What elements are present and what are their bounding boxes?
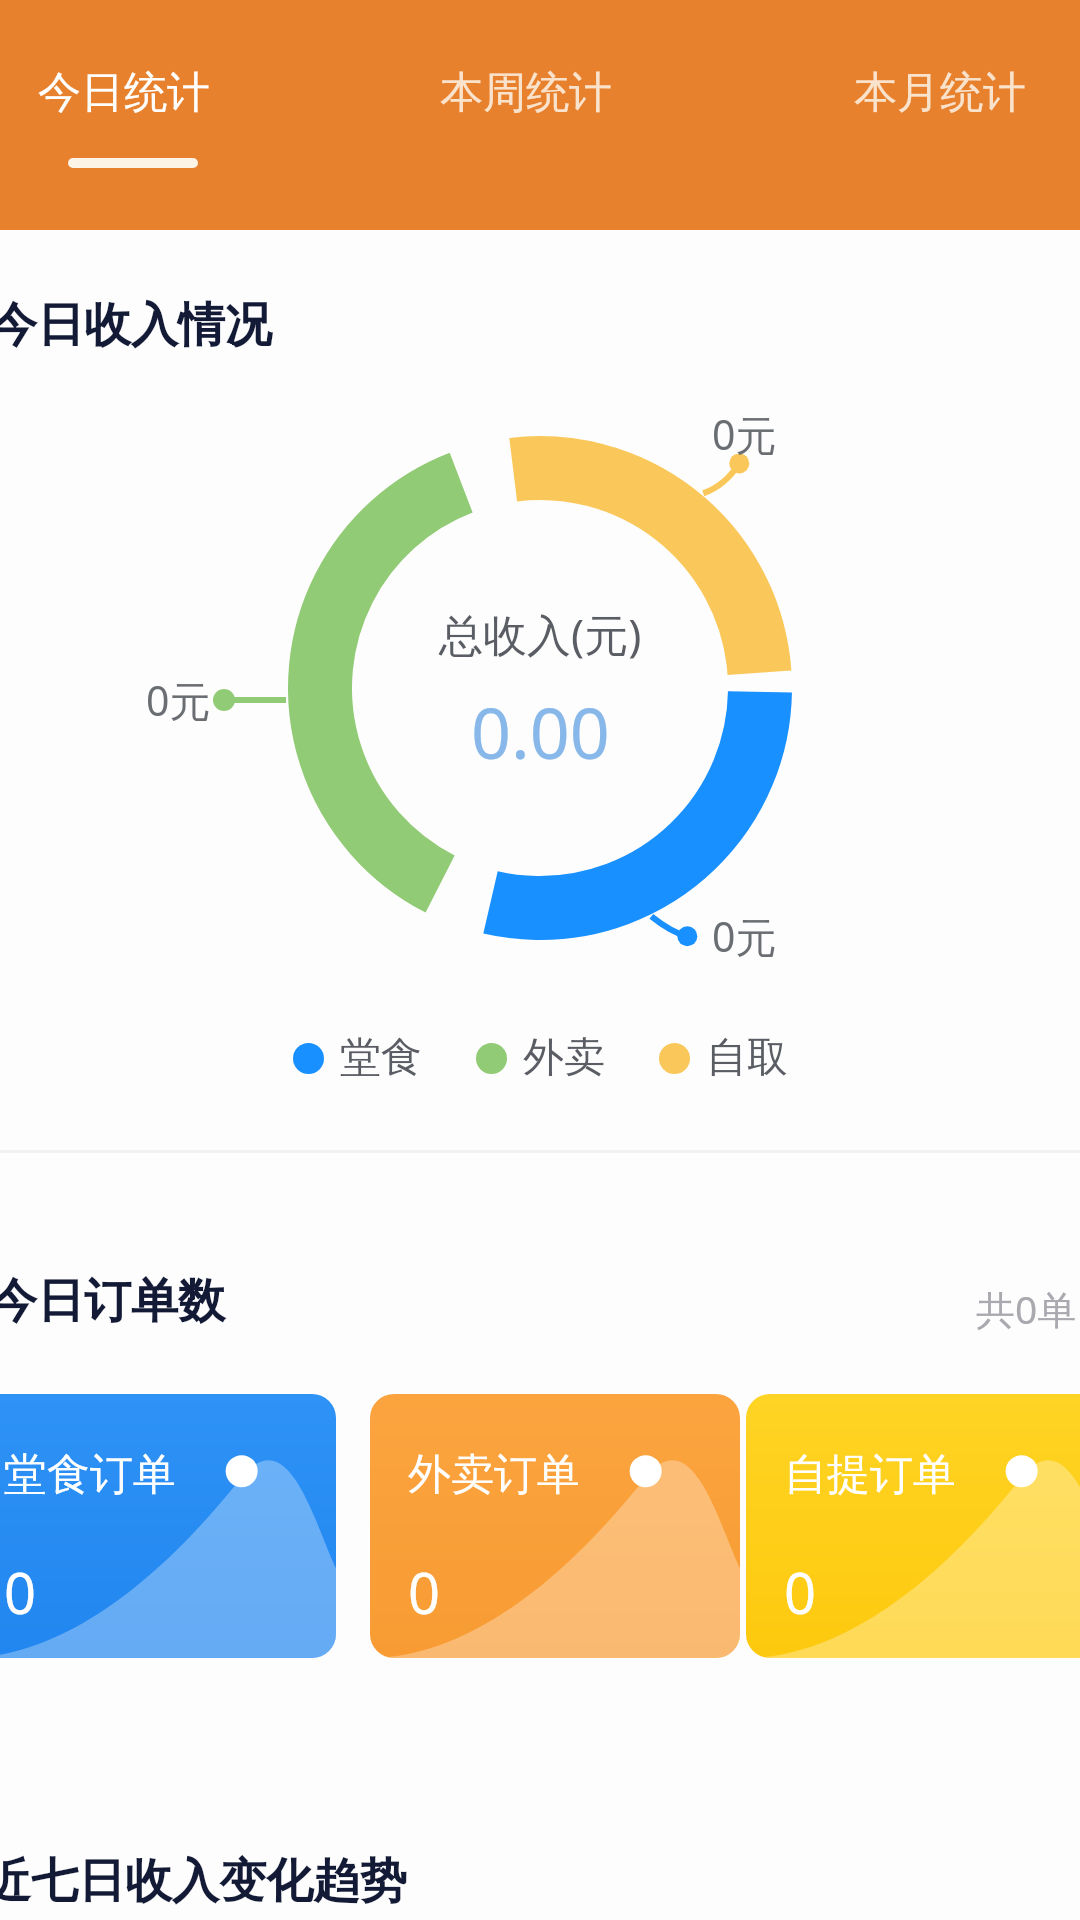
staticText: 堂食 (340, 1032, 422, 1084)
staticText: 外卖 (523, 1032, 605, 1084)
button[interactable]: 本周统计 (398, 44, 658, 154)
button[interactable]: 堂食订单 (0, 1394, 336, 1658)
staticText: 今日订单数 (0, 1272, 225, 1331)
staticText: 0.00 (471, 684, 610, 779)
staticText: 今日收入情况 (0, 296, 272, 355)
staticText: 0 (784, 1554, 817, 1630)
button[interactable]: 今日统计 (10, 44, 270, 194)
button[interactable]: 外卖订单 (370, 1394, 740, 1658)
staticText: 自提订单 (784, 1448, 956, 1502)
button[interactable]: 外卖 (476, 1032, 605, 1084)
staticText: 0 (408, 1554, 441, 1630)
staticText: 堂食订单 (4, 1448, 176, 1502)
button[interactable]: 自取 (659, 1032, 788, 1084)
staticText: 0元 (712, 406, 777, 462)
staticText: 0元 (712, 908, 777, 964)
staticText: 今日统计 (38, 66, 210, 120)
other: Income breakdown donut chart (0, 0, 1080, 1920)
button[interactable]: 本月统计 (786, 44, 1056, 154)
staticText: 总收入(元) (439, 604, 642, 664)
button[interactable]: 自提订单 (746, 1394, 1080, 1658)
staticText: 共0单 (976, 1282, 1077, 1335)
staticText: 近七日收入变化趋势 (0, 1852, 407, 1911)
staticText: 自取 (706, 1032, 788, 1084)
staticText: 外卖订单 (408, 1448, 580, 1502)
staticText: 本月统计 (854, 66, 1026, 120)
button[interactable]: 堂食 (293, 1032, 422, 1084)
staticText: 0元 (146, 672, 211, 728)
staticText: 本周统计 (440, 66, 612, 120)
staticText: 0 (4, 1554, 37, 1630)
